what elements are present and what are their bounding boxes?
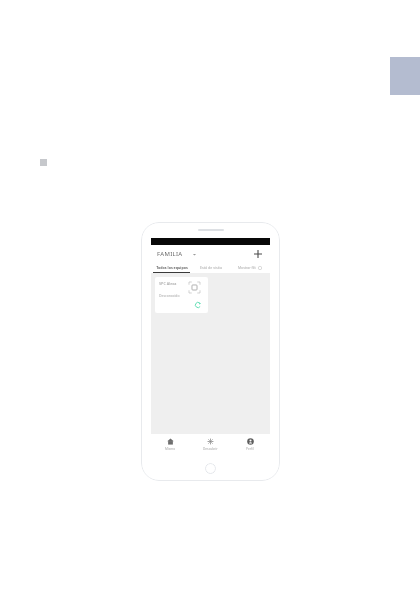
staticText: Perfil [246,447,254,451]
button[interactable]: Mismo [151,434,190,455]
button[interactable]: FAMILIA [157,248,197,260]
button[interactable]: Descubrir [190,434,230,455]
button[interactable]: SPC Alexa [155,277,208,313]
button[interactable]: Add device [252,248,264,260]
staticText: SPC Alexa [159,281,177,286]
staticText: Descubrir [203,447,218,451]
staticText: Todos los equipos [156,265,188,270]
button[interactable]: Está de visita [192,262,230,273]
staticText: Mostrar filt [238,265,256,270]
button[interactable]: Mostrar filt [230,262,270,273]
staticText: Desconocido [159,293,180,298]
staticText: Mismo [165,447,176,451]
button[interactable]: Todos los equipos [151,262,192,273]
button[interactable]: Perfil [230,434,270,455]
staticText: FAMILIA [157,250,183,258]
staticText: Está de visita [200,265,222,270]
